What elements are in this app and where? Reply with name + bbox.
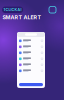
button[interactable]	[17, 56, 45, 62]
staticText: SMART ALERT	[2, 14, 41, 21]
button[interactable]: 1 CLICK AI	[2, 6, 23, 13]
button[interactable]	[17, 44, 45, 50]
button[interactable]	[17, 62, 45, 68]
button[interactable]	[17, 38, 45, 44]
button[interactable]	[17, 50, 45, 56]
staticText: 1 CLICK AI	[4, 8, 22, 12]
button[interactable]	[17, 68, 45, 74]
button[interactable]	[17, 83, 45, 86]
button[interactable]: AI assistant	[49, 6, 56, 13]
